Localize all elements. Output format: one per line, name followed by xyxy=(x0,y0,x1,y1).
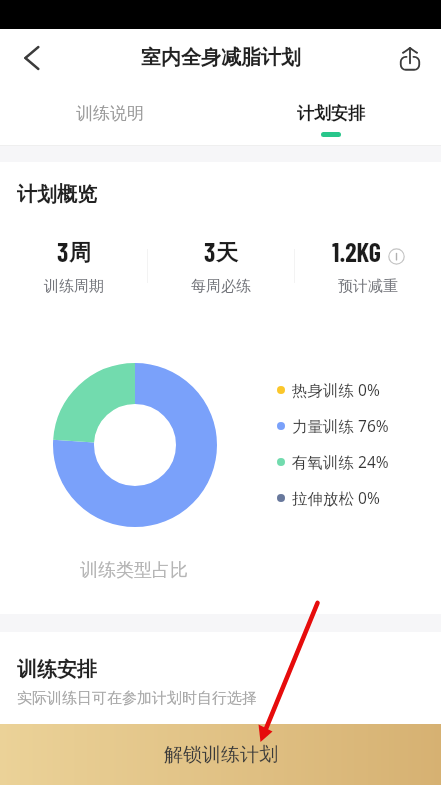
staticText: 天 xyxy=(216,239,238,267)
staticText: 计划安排 xyxy=(297,103,365,124)
staticText: 训练说明 xyxy=(76,103,144,124)
staticText: 3 xyxy=(204,236,216,267)
staticText: 室内全身减脂计划 xyxy=(141,45,301,70)
staticText: 计划概览 xyxy=(17,182,97,207)
staticText: 拉伸放松 0% xyxy=(292,487,380,508)
button[interactable]: 训练说明 xyxy=(0,87,220,132)
staticText: 解锁训练计划 xyxy=(164,743,278,767)
staticText: 热身训练 0% xyxy=(292,379,380,400)
staticText: 预计减重 xyxy=(338,277,398,296)
staticText: 实际训练日可在参加计划时自行选择 xyxy=(17,689,257,708)
staticText: 1.2KG xyxy=(332,236,381,267)
button[interactable]: Share xyxy=(388,36,432,80)
button[interactable]: 计划安排 xyxy=(220,87,441,137)
staticText: 训练类型占比 xyxy=(80,559,188,582)
staticText: 每周必练 xyxy=(191,277,251,296)
button[interactable]: 解锁训练计划 xyxy=(0,724,441,785)
staticText: 有氧训练 24% xyxy=(292,451,389,472)
staticText: 周 xyxy=(69,239,91,267)
button[interactable]: Back xyxy=(10,36,54,80)
staticText: 3 xyxy=(57,236,69,267)
staticText: 训练周期 xyxy=(44,277,104,296)
staticText: 训练安排 xyxy=(17,657,97,682)
staticText: 力量训练 76% xyxy=(292,415,389,436)
